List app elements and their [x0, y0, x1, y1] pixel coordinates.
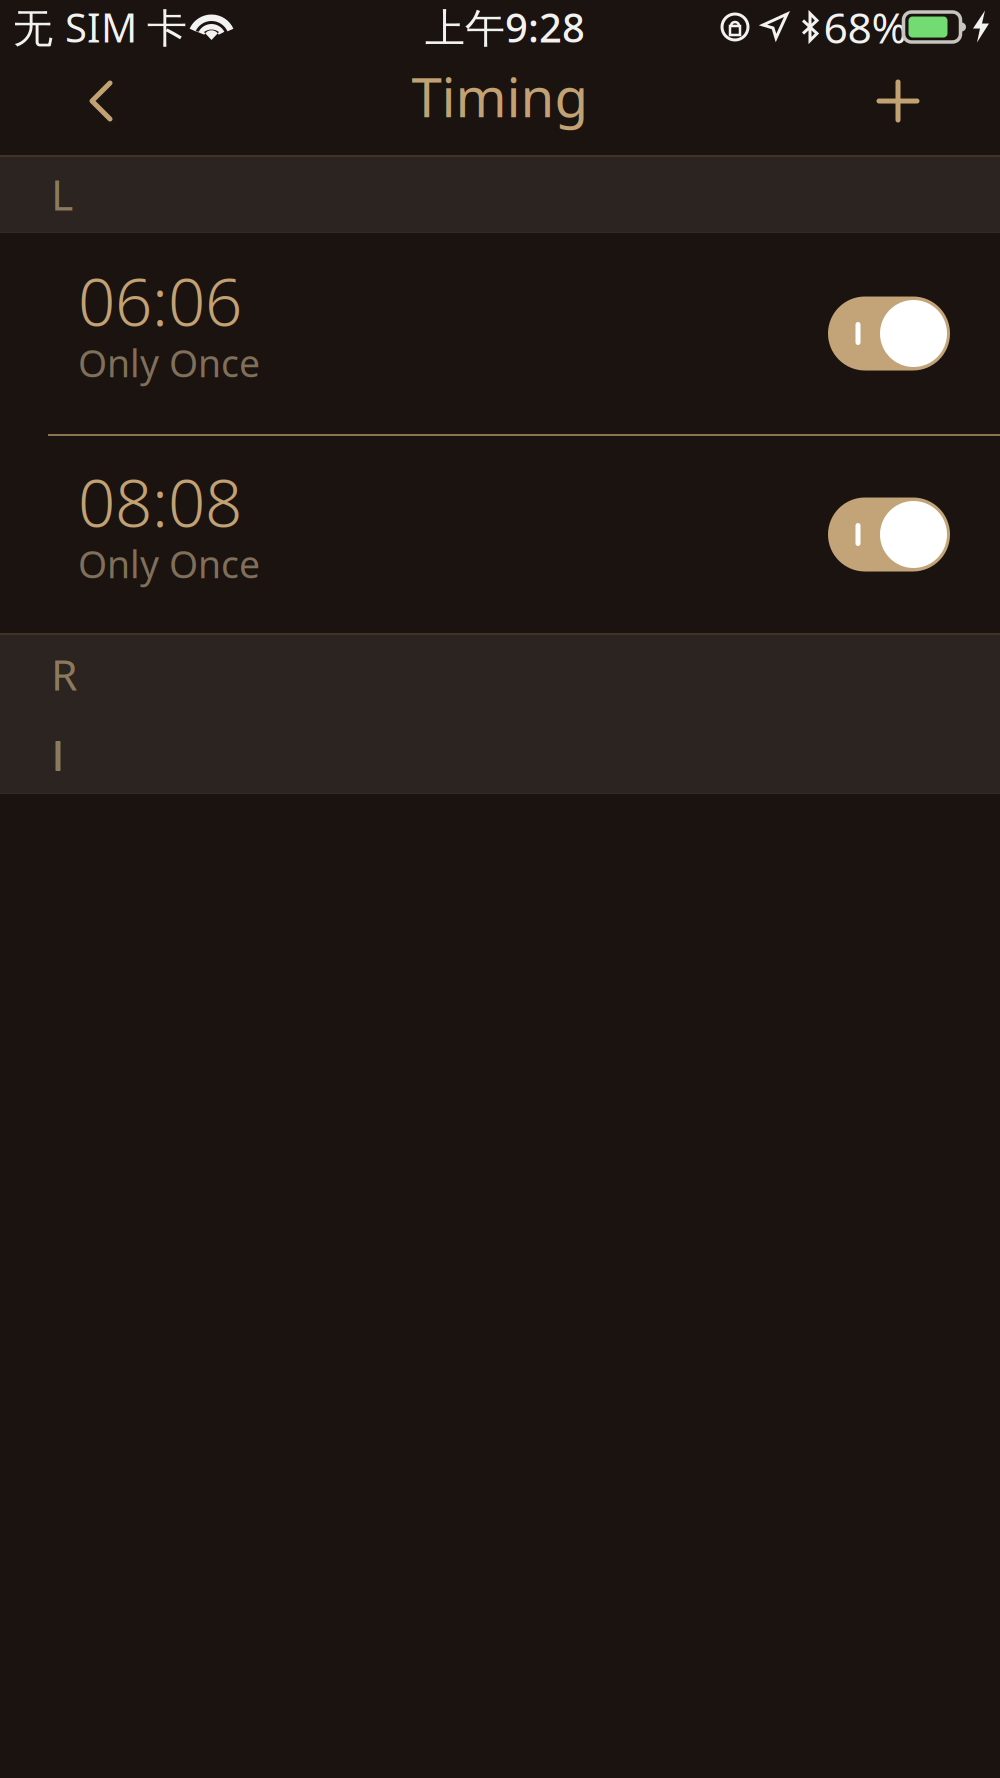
staticText: 68%	[823, 0, 906, 55]
staticText: R	[51, 646, 78, 702]
staticText: Timing	[411, 60, 588, 132]
staticText: 无 SIM 卡	[13, 0, 187, 53]
button[interactable]: Back	[51, 51, 151, 151]
staticText: 06:06	[78, 257, 242, 344]
staticText: 08:08	[78, 458, 242, 545]
button[interactable]: Add	[848, 51, 948, 151]
staticText: 上午9:28	[425, 0, 585, 53]
staticText: L	[51, 166, 73, 222]
staticText: Only Once	[78, 539, 260, 589]
button[interactable]: 06:06	[0, 233, 1000, 434]
button[interactable]: 08:08	[0, 436, 1000, 633]
staticText: Only Once	[78, 338, 260, 388]
